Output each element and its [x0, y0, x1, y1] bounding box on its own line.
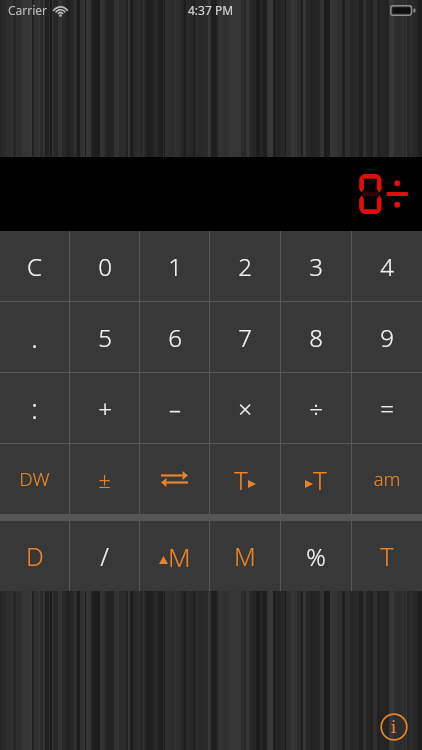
- button[interactable]: Time to: [210, 444, 280, 514]
- button[interactable]: 4: [352, 231, 422, 301]
- staticText: M: [234, 539, 256, 573]
- staticText: M: [168, 539, 191, 574]
- staticText: Carrier: [8, 2, 48, 18]
- button[interactable]: =: [352, 373, 422, 443]
- button[interactable]: 9: [352, 302, 422, 372]
- staticText: 3: [309, 250, 323, 283]
- button[interactable]: 0: [70, 231, 139, 301]
- button[interactable]: Info: [380, 713, 408, 741]
- button[interactable]: 3: [281, 231, 351, 301]
- staticText: ±: [98, 464, 111, 494]
- staticText: DW: [19, 466, 50, 492]
- staticText: .: [31, 319, 38, 356]
- staticText: %: [306, 540, 326, 573]
- button[interactable]: +: [70, 373, 139, 443]
- button[interactable]: DW: [0, 444, 69, 514]
- staticText: :: [31, 390, 38, 427]
- button[interactable]: 8: [281, 302, 351, 372]
- staticText: T: [380, 539, 394, 573]
- staticText: 9: [380, 321, 394, 354]
- staticText: T: [313, 462, 327, 497]
- button[interactable]: –: [140, 373, 209, 443]
- button[interactable]: ±: [70, 444, 139, 514]
- staticText: =: [380, 392, 394, 425]
- staticText: 8: [309, 321, 323, 354]
- staticText: –: [169, 392, 181, 425]
- staticText: C: [27, 250, 42, 283]
- staticText: 5: [98, 321, 112, 354]
- button[interactable]: D: [0, 521, 69, 591]
- button[interactable]: 7: [210, 302, 280, 372]
- staticText: 7: [238, 321, 252, 354]
- staticText: ÷: [309, 392, 323, 425]
- button[interactable]: /: [70, 521, 139, 591]
- button[interactable]: %: [281, 521, 351, 591]
- staticText: T: [234, 462, 248, 497]
- staticText: 1: [168, 250, 182, 283]
- staticText: D: [26, 539, 44, 573]
- button[interactable]: ÷: [281, 373, 351, 443]
- staticText: 4: [380, 250, 394, 283]
- button[interactable]: M: [210, 521, 280, 591]
- staticText: 0: [98, 250, 112, 283]
- button[interactable]: Memory add: [140, 521, 209, 591]
- staticText: /: [100, 539, 109, 573]
- staticText: 4:37 PM: [188, 2, 234, 18]
- staticText: 2: [238, 250, 252, 283]
- staticText: +: [98, 392, 112, 425]
- button[interactable]: ×: [210, 373, 280, 443]
- button[interactable]: 6: [140, 302, 209, 372]
- button[interactable]: T: [352, 521, 422, 591]
- button[interactable]: From time: [281, 444, 351, 514]
- staticText: ×: [238, 392, 252, 425]
- staticText: i: [391, 716, 397, 738]
- staticText: 6: [168, 321, 182, 354]
- button[interactable]: 1: [140, 231, 209, 301]
- button[interactable]: .: [0, 302, 69, 372]
- button[interactable]: 5: [70, 302, 139, 372]
- button[interactable]: C: [0, 231, 69, 301]
- staticText: am: [373, 466, 401, 492]
- button[interactable]: am: [352, 444, 422, 514]
- button[interactable]: Swap: [140, 444, 209, 514]
- button[interactable]: 2: [210, 231, 280, 301]
- button[interactable]: :: [0, 373, 69, 443]
